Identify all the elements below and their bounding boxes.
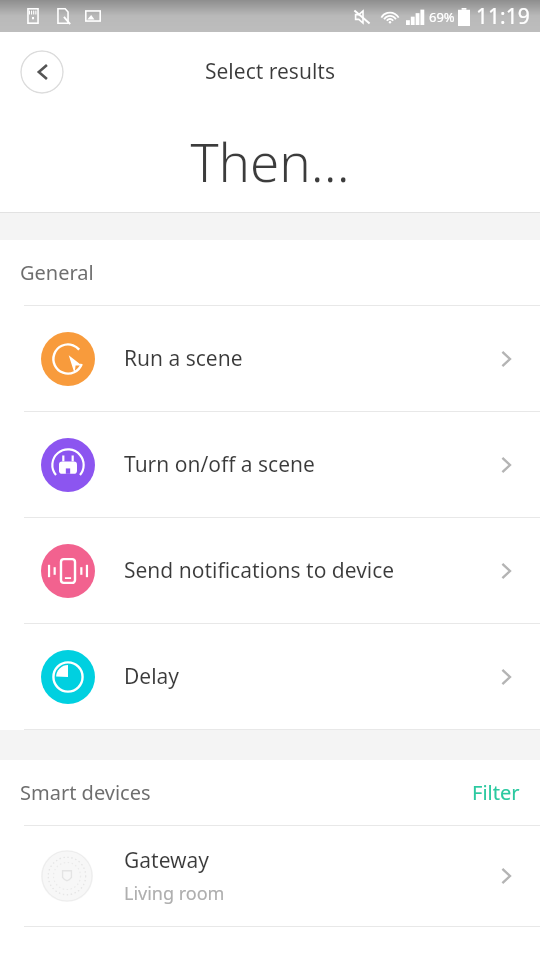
button[interactable]: Back [20, 50, 64, 94]
button[interactable]: Turn on/off a scene [0, 412, 540, 517]
button[interactable]: Filter [456, 771, 540, 814]
staticText: 11:19 [476, 2, 530, 31]
staticText: 69% [429, 8, 455, 26]
staticText: Gateway [124, 846, 210, 875]
staticText: Then... [190, 125, 350, 197]
button[interactable]: Send notifications to device [0, 518, 540, 623]
staticText: Living room [124, 881, 225, 906]
staticText: Smart devices [20, 779, 151, 806]
staticText: Filter [472, 779, 520, 806]
button[interactable]: Delay [0, 624, 540, 729]
button[interactable]: Run a scene [0, 306, 540, 411]
staticText: General [20, 259, 94, 286]
staticText: Turn on/off a scene [124, 450, 494, 479]
staticText: Select results [205, 57, 335, 86]
staticText: Send notifications to device [124, 556, 494, 585]
staticText: Run a scene [124, 344, 494, 373]
button[interactable]: Gateway [0, 826, 540, 926]
staticText: Delay [124, 662, 494, 691]
